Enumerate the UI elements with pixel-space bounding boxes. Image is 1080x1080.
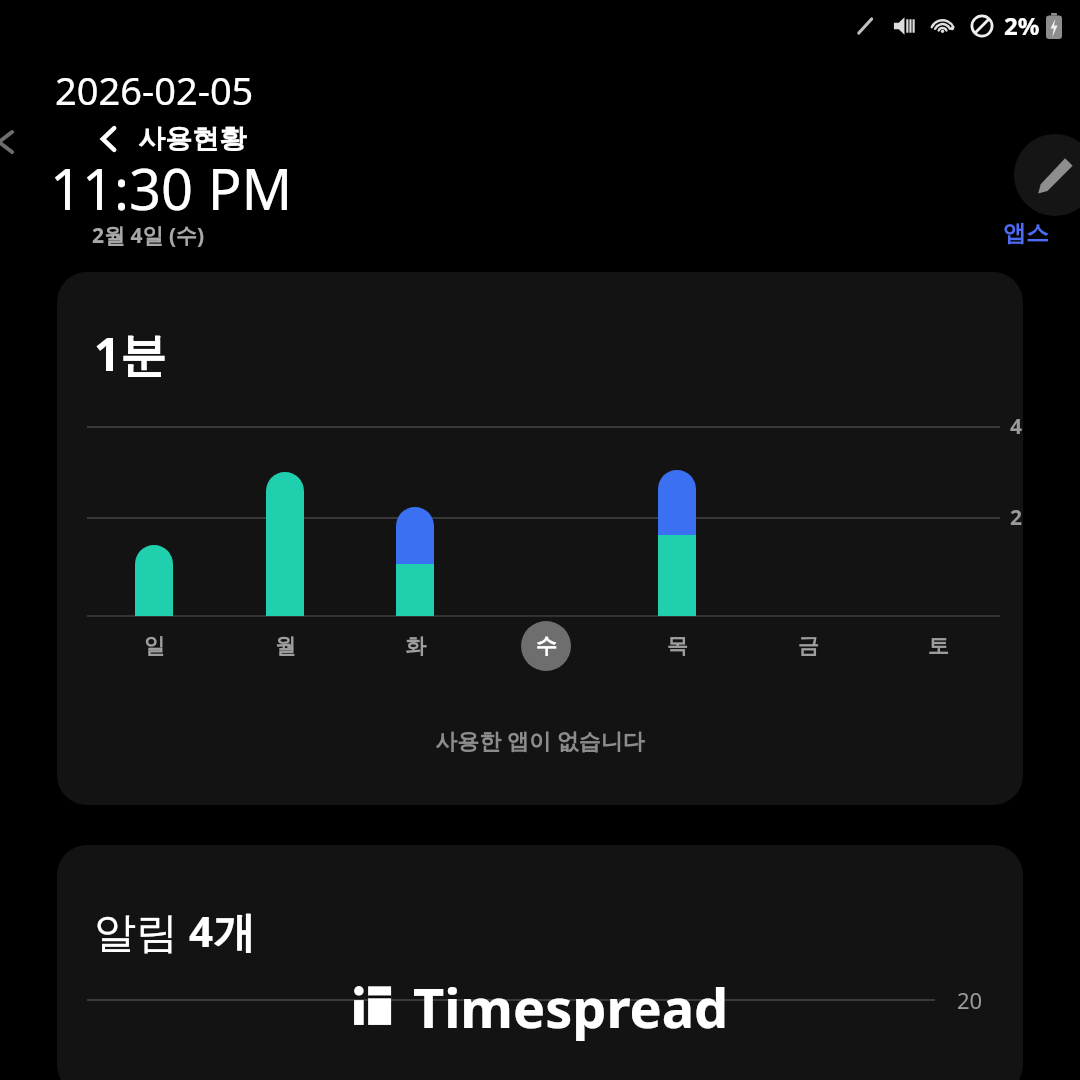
staticText: 일	[144, 633, 165, 659]
button[interactable]: 1분	[57, 272, 1023, 805]
staticText: 1분	[94, 322, 167, 385]
staticText: 목	[667, 633, 688, 659]
staticText: 알림	[94, 902, 189, 959]
staticText: 화	[405, 633, 426, 659]
staticText: Timespread	[413, 970, 729, 1044]
staticText: 사용한 앱이 없습니다	[57, 725, 1023, 755]
button[interactable]: 토	[913, 621, 963, 671]
staticText: 2분	[1010, 503, 1023, 532]
staticText: 20	[957, 985, 983, 1015]
button[interactable]: 화	[390, 621, 440, 671]
staticText: 월	[275, 633, 296, 659]
staticText: 수	[536, 633, 557, 659]
staticText: 토	[928, 633, 949, 659]
staticText: 2%	[1004, 9, 1040, 42]
staticText: 11:30 PM	[50, 150, 293, 226]
staticText: 금	[798, 633, 819, 659]
button[interactable]: Back	[86, 116, 246, 162]
button[interactable]: 수	[521, 621, 571, 671]
button[interactable]: 일	[129, 621, 179, 671]
staticText: 2월 4일 (수)	[92, 221, 205, 250]
button[interactable]: Edit	[1014, 134, 1080, 216]
staticText: 4개	[189, 902, 256, 959]
staticText: 4분	[1010, 412, 1023, 441]
other: Back	[86, 116, 132, 162]
staticText: 2026-02-05	[55, 64, 254, 116]
button[interactable]: 월	[260, 621, 310, 671]
button[interactable]: 목	[652, 621, 702, 671]
button[interactable]: 알림	[57, 845, 1023, 1080]
button[interactable]: 금	[783, 621, 833, 671]
button[interactable]: 앱스	[1003, 219, 1049, 248]
staticText: 사용현황	[138, 122, 246, 156]
